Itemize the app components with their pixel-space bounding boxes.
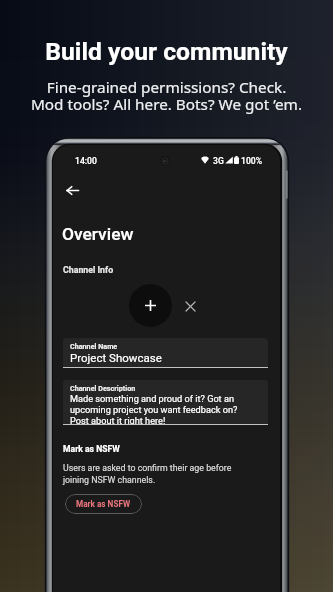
button[interactable]: Mark as NSFW xyxy=(65,494,142,514)
staticText: 14:00 xyxy=(75,156,97,166)
staticText: Build your community xyxy=(0,37,333,66)
button[interactable]: Back xyxy=(60,178,84,202)
staticText: Fine-grained permissions? Check. Mod too… xyxy=(0,77,333,114)
staticText: Mark as NSFW xyxy=(63,444,120,454)
staticText: 100% xyxy=(241,156,262,166)
staticText: Made something and proud of it? Got an u… xyxy=(70,393,238,425)
staticText: Overview xyxy=(62,224,134,244)
staticText: Users are asked to confirm their age bef… xyxy=(63,463,232,485)
staticText: 3G xyxy=(213,156,224,166)
button[interactable]: Channel Description xyxy=(63,380,268,425)
staticText: Channel Info xyxy=(63,265,114,275)
staticText: Channel Description xyxy=(70,384,136,392)
button[interactable]: Add channel icon xyxy=(129,284,172,327)
staticText: Channel Name xyxy=(70,342,118,350)
staticText: Mark as NSFW xyxy=(76,499,131,509)
staticText: Project Showcase xyxy=(70,351,162,364)
button[interactable]: Remove icon xyxy=(181,297,199,315)
button[interactable]: Channel Name xyxy=(63,338,268,368)
